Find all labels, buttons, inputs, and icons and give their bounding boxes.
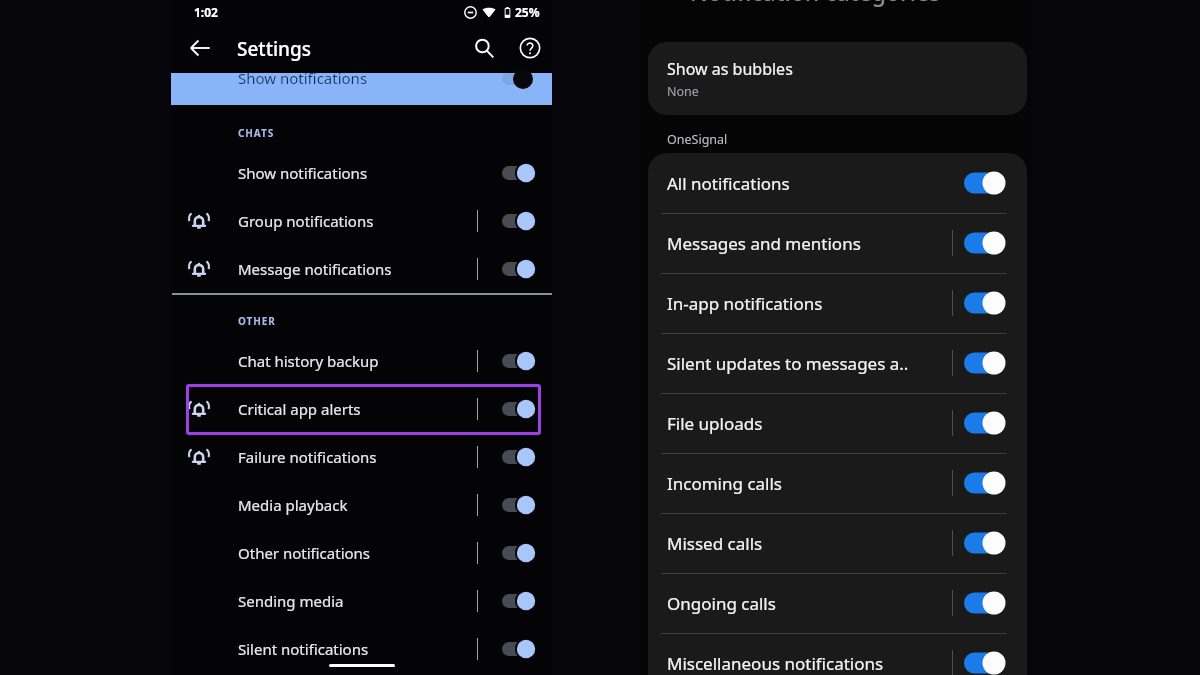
staticText: Chat history backup xyxy=(238,351,379,371)
button[interactable]: Incoming calls xyxy=(648,453,1027,513)
staticText: All notifications xyxy=(667,172,790,195)
button[interactable]: In-app notifications xyxy=(648,273,1027,333)
staticText: Miscellaneous notifications xyxy=(667,652,884,675)
button[interactable]: Group notifications xyxy=(171,197,552,245)
button[interactable]: Help xyxy=(510,28,550,68)
staticText: Critical app alerts xyxy=(238,399,361,419)
staticText: Group notifications xyxy=(238,211,374,231)
staticText: Ongoing calls xyxy=(667,592,776,615)
staticText: 1:02 xyxy=(194,4,218,20)
button[interactable]: Critical app alerts xyxy=(171,385,552,433)
button[interactable]: Ongoing calls xyxy=(648,573,1027,633)
button[interactable]: File uploads xyxy=(648,393,1027,453)
button[interactable]: Failure notifications xyxy=(171,433,552,481)
button[interactable]: Miscellaneous notifications xyxy=(648,633,1027,675)
staticText: CHATS xyxy=(238,126,275,140)
staticText: Message notifications xyxy=(238,259,392,279)
staticText: Incoming calls xyxy=(667,472,782,495)
button[interactable]: Message notifications xyxy=(171,245,552,293)
button[interactable]: Show notifications xyxy=(171,149,552,197)
staticText: Sending media xyxy=(238,591,344,611)
button[interactable]: All notifications xyxy=(648,153,1027,213)
staticText: Failure notifications xyxy=(238,447,377,467)
button[interactable]: Chat history backup xyxy=(171,337,552,385)
button[interactable]: Silent notifications xyxy=(171,625,552,673)
button[interactable]: Silent updates to messages a.. xyxy=(648,333,1027,393)
staticText: Other notifications xyxy=(238,543,371,563)
staticText: In-app notifications xyxy=(667,292,823,315)
button[interactable]: Show as bubbles xyxy=(648,42,1027,115)
staticText: OneSignal xyxy=(667,131,728,148)
staticText: File uploads xyxy=(667,412,763,435)
staticText: Show as bubbles xyxy=(667,58,793,80)
staticText: Missed calls xyxy=(667,532,763,555)
staticText: None xyxy=(667,83,699,100)
staticText: Notification categories xyxy=(690,0,941,7)
button[interactable]: Sending media xyxy=(171,577,552,625)
button[interactable]: Back xyxy=(180,28,220,68)
button[interactable]: Other notifications xyxy=(171,529,552,577)
staticText: Show notifications xyxy=(238,163,368,183)
button[interactable]: Missed calls xyxy=(648,513,1027,573)
button[interactable]: Search xyxy=(464,28,504,68)
staticText: OTHER xyxy=(238,314,276,328)
staticText: Silent notifications xyxy=(238,639,369,659)
button[interactable]: Show notifications xyxy=(171,73,552,105)
staticText: 25% xyxy=(515,4,540,20)
staticText: Silent updates to messages a.. xyxy=(667,352,909,375)
staticText: Settings xyxy=(237,36,311,62)
staticText: Messages and mentions xyxy=(667,232,861,255)
button[interactable]: Messages and mentions xyxy=(648,213,1027,273)
button[interactable]: Media playback xyxy=(171,481,552,529)
staticText: Media playback xyxy=(238,495,348,515)
staticText: Show notifications xyxy=(238,68,368,88)
